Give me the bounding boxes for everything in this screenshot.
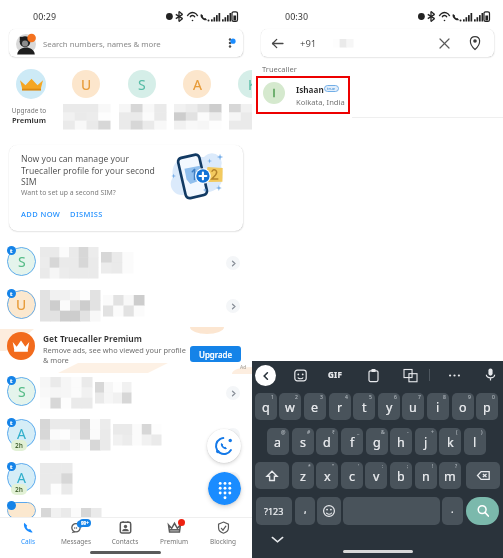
- button[interactable]: .: [442, 497, 463, 525]
- button[interactable]: Details: [226, 299, 240, 313]
- button[interactable]: k: [439, 428, 461, 455]
- button[interactable]: c: [341, 462, 363, 489]
- button[interactable]: s: [292, 428, 314, 455]
- button[interactable]: Translate: [402, 367, 418, 383]
- button[interactable]: Upgrade: [190, 346, 241, 362]
- button[interactable]: u: [402, 393, 424, 420]
- button[interactable]: Details: [226, 386, 240, 400]
- staticText: U: [16, 295, 27, 314]
- button[interactable]: y: [378, 393, 400, 420]
- button[interactable]: q: [255, 393, 277, 420]
- button[interactable]: Premium: [150, 518, 198, 550]
- staticText: n: [422, 468, 430, 485]
- button[interactable]: More options: [221, 34, 239, 52]
- button[interactable]: More options: [446, 367, 462, 383]
- staticText: b: [397, 468, 405, 485]
- button[interactable]: Details: [226, 256, 240, 270]
- staticText: A: [193, 75, 202, 94]
- button[interactable]: 99+: [52, 518, 100, 550]
- button[interactable]: Back: [255, 365, 276, 386]
- button[interactable]: S: [0, 372, 252, 415]
- button[interactable]: Back: [261, 29, 494, 57]
- button[interactable]: r: [329, 393, 351, 420]
- button[interactable]: n: [415, 462, 437, 489]
- staticText: A: [17, 468, 26, 487]
- button[interactable]: S: [128, 70, 156, 98]
- staticText: @: [281, 429, 286, 436]
- button[interactable]: A: [0, 414, 252, 457]
- staticText: Premium: [150, 537, 198, 546]
- staticText: true: [327, 86, 336, 92]
- button[interactable]: Backspace: [466, 462, 500, 489]
- button[interactable]: U: [72, 70, 100, 98]
- button[interactable]: e: [304, 393, 326, 420]
- button[interactable]: j: [415, 428, 437, 455]
- staticText: Blocking: [199, 537, 247, 546]
- staticText: ADD NOW: [21, 209, 61, 219]
- button[interactable]: i: [427, 393, 449, 420]
- button[interactable]: Search numbers, names & more: [9, 29, 243, 57]
- button[interactable]: S: [0, 242, 252, 285]
- button[interactable]: Clear: [435, 34, 453, 52]
- button[interactable]: Back: [269, 35, 285, 51]
- staticText: -: [407, 429, 409, 436]
- staticText: ,: [304, 502, 307, 516]
- staticText: #: [307, 429, 311, 436]
- button[interactable]: ,: [295, 497, 315, 525]
- button[interactable]: U: [0, 285, 252, 328]
- button[interactable]: DISMISS: [70, 209, 103, 219]
- button[interactable]: v: [365, 462, 387, 489]
- staticText: ": [332, 463, 335, 470]
- button[interactable]: [16, 69, 46, 99]
- button[interactable]: Shift: [255, 462, 289, 489]
- staticText: 1: [271, 394, 274, 401]
- button[interactable]: Search: [466, 497, 499, 525]
- button[interactable]: Location: [465, 33, 485, 53]
- button[interactable]: p: [476, 393, 498, 420]
- button[interactable]: ?123: [256, 497, 292, 525]
- button[interactable]: Details: [226, 428, 240, 442]
- button[interactable]: Emoji: [292, 367, 308, 383]
- button[interactable]: m: [439, 462, 461, 489]
- button[interactable]: Dialpad: [208, 472, 241, 505]
- button[interactable]: ADD NOW: [21, 209, 61, 219]
- staticText: t: [10, 290, 13, 297]
- button[interactable]: t: [353, 393, 375, 420]
- button[interactable]: Clipboard: [365, 367, 381, 383]
- button[interactable]: Details: [226, 472, 240, 486]
- staticText: _: [357, 429, 360, 436]
- staticText: t: [10, 463, 13, 470]
- button[interactable]: x: [316, 462, 338, 489]
- button[interactable]: Now you can manage your Truecaller profi…: [9, 145, 243, 231]
- button[interactable]: Emoji: [317, 497, 341, 525]
- button[interactable]: A: [0, 458, 252, 501]
- staticText: 00:29: [33, 10, 57, 22]
- button[interactable]: Calls: [4, 518, 52, 550]
- button[interactable]: Call assistant: [207, 429, 241, 463]
- staticText: ): [481, 429, 483, 436]
- button[interactable]: w: [279, 393, 301, 420]
- button[interactable]: d: [316, 428, 338, 455]
- button[interactable]: f: [341, 428, 363, 455]
- staticText: U: [81, 75, 92, 94]
- button[interactable]: g: [366, 428, 388, 455]
- button[interactable]: Contacts: [101, 518, 149, 550]
- button[interactable]: b: [390, 462, 412, 489]
- button[interactable]: Get Truecaller Premium: [0, 327, 252, 373]
- staticText: g: [373, 434, 381, 451]
- button[interactable]: l: [464, 428, 486, 455]
- staticText: ?: [455, 463, 458, 470]
- button[interactable]: a: [267, 428, 289, 455]
- button[interactable]: Blocking: [199, 518, 247, 550]
- button[interactable]: z: [292, 462, 314, 489]
- button[interactable]: o: [452, 393, 474, 420]
- button[interactable]: Ishaan: [256, 76, 350, 114]
- staticText: 99+: [81, 520, 89, 526]
- button[interactable]: Voice input: [482, 366, 498, 382]
- staticText: 6: [394, 394, 397, 401]
- button[interactable]: h: [390, 428, 412, 455]
- button[interactable]: A: [183, 70, 211, 98]
- button[interactable]: K: [238, 70, 266, 98]
- button[interactable]: GIF: [328, 369, 343, 380]
